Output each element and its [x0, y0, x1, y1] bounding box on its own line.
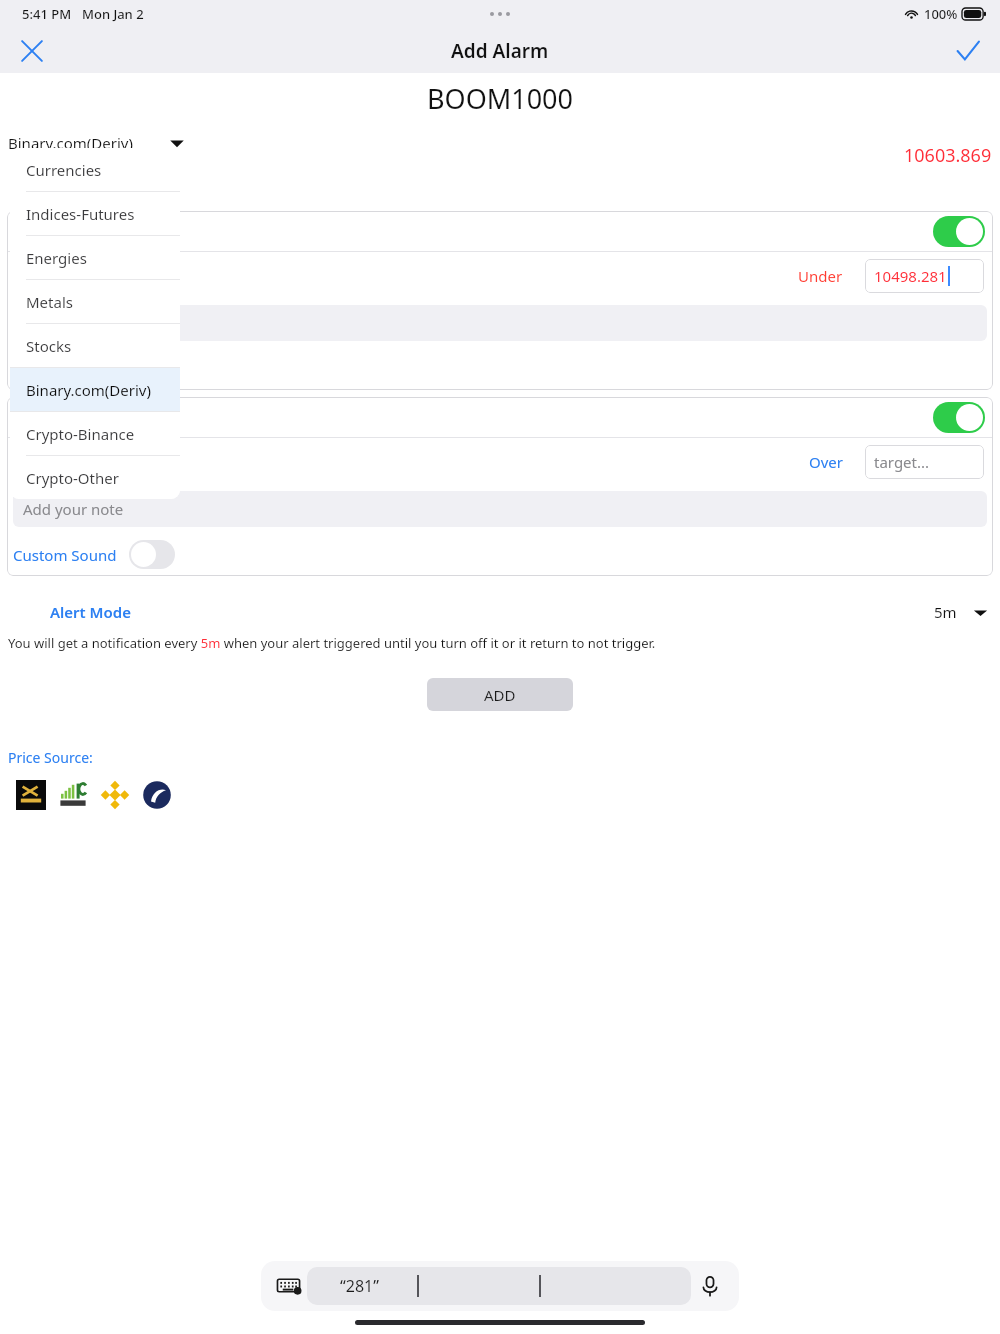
staticText: ADD: [484, 685, 516, 705]
staticText: Crypto-Other: [26, 468, 119, 488]
button[interactable]: 5m: [934, 602, 988, 622]
staticText: Indices-Futures: [26, 204, 135, 224]
staticText: Mon Jan 2: [82, 5, 144, 23]
staticText: Under target: [49, 221, 144, 241]
staticText: Binary.com(Deriv): [8, 133, 133, 153]
staticText: Under: [798, 266, 843, 286]
button[interactable]: 10498.281: [865, 259, 984, 293]
button[interactable]: On: [933, 216, 985, 247]
staticText: 10603.869: [904, 143, 992, 168]
button[interactable]: On: [933, 402, 985, 433]
staticText: Binary.com(Deriv): [26, 380, 151, 400]
button[interactable]: Dictate: [691, 1267, 729, 1305]
button[interactable]: target...: [865, 445, 984, 479]
staticText: Custom Sound: [13, 545, 117, 565]
button[interactable]: Crypto-Binance: [10, 412, 180, 455]
staticText: “281”: [340, 1275, 379, 1297]
staticText: Add your note: [23, 499, 124, 519]
button[interactable]: Close: [10, 29, 54, 73]
button[interactable]: Confirm: [946, 29, 990, 73]
button[interactable]: Custom Sound: [13, 540, 175, 569]
staticText: Currencies: [26, 160, 102, 180]
button[interactable]: ADD: [427, 678, 573, 711]
button[interactable]: Add your note: [13, 491, 987, 527]
staticText: Crypto-Binance: [26, 424, 135, 444]
staticText: Over target: [49, 407, 134, 427]
button[interactable]: Energies: [10, 236, 180, 279]
button[interactable]: Currencies: [10, 148, 180, 191]
button[interactable]: [100, 780, 130, 810]
staticText: Stocks: [26, 336, 72, 356]
button[interactable]: Add your note: [13, 305, 987, 341]
staticText: BOOM1000: [19, 452, 101, 472]
button[interactable]: Over: [809, 452, 843, 472]
button[interactable]: Metals: [10, 280, 180, 323]
staticText: Add your note: [23, 313, 124, 333]
button[interactable]: Alert Mode: [50, 602, 131, 622]
button[interactable]: Binary.com(Deriv): [10, 368, 180, 411]
button[interactable]: [58, 780, 88, 810]
button[interactable]: [16, 780, 46, 810]
button[interactable]: Keyboard: [271, 1268, 307, 1304]
staticText: 10498.281: [874, 266, 947, 286]
button[interactable]: Under: [798, 266, 843, 286]
staticText: Alert Mode: [50, 602, 131, 622]
button[interactable]: [142, 780, 172, 810]
button[interactable]: Indices-Futures: [10, 192, 180, 235]
staticText: Add Alarm: [451, 38, 549, 64]
staticText: You will get a notification every 5m whe…: [8, 634, 656, 652]
button[interactable]: Crypto-Other: [10, 456, 180, 499]
staticText: BOOM1000: [19, 266, 101, 286]
staticText: target...: [874, 452, 930, 472]
button[interactable]: “281”: [307, 1267, 691, 1305]
staticText: Over: [809, 452, 843, 472]
staticText: Energies: [26, 248, 87, 268]
staticText: 5m: [934, 602, 957, 622]
button[interactable]: Off: [129, 540, 175, 569]
button[interactable]: Binary.com(Deriv): [8, 133, 185, 153]
button[interactable]: Stocks: [10, 324, 180, 367]
staticText: BOOM1000: [427, 80, 573, 117]
staticText: 5:41 PM: [22, 5, 72, 23]
button[interactable]: Over target: [7, 397, 993, 437]
staticText: 100%: [924, 5, 958, 23]
button[interactable]: Under target: [7, 211, 993, 251]
staticText: Metals: [26, 292, 73, 312]
staticText: Price Source:: [8, 748, 93, 767]
